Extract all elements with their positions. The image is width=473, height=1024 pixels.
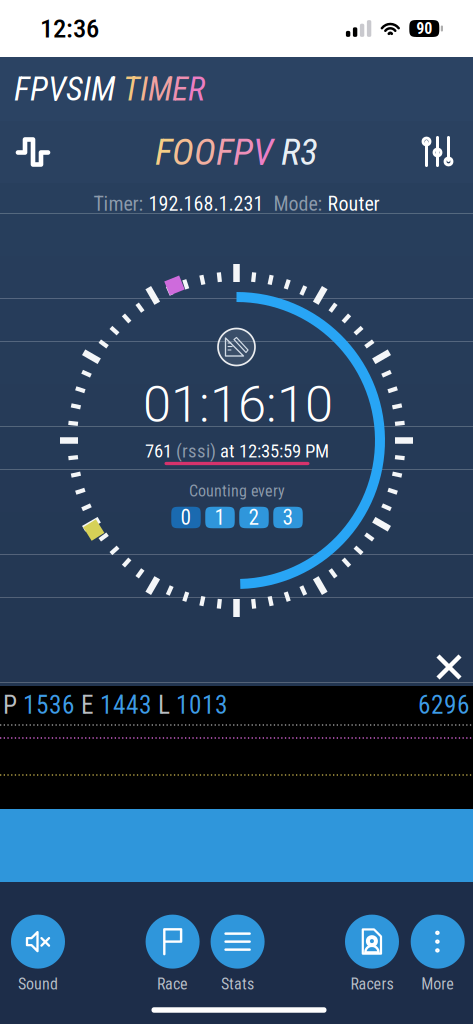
button[interactable]: Race <box>141 915 205 993</box>
staticText: 1536 <box>23 690 75 720</box>
staticText: E <box>172 69 188 109</box>
staticText: O <box>172 130 194 174</box>
staticText: E <box>75 690 100 720</box>
button[interactable]: 0 <box>171 507 201 528</box>
staticText: Counting every <box>189 482 285 500</box>
staticText: T <box>123 69 140 109</box>
staticText: R <box>188 69 205 109</box>
staticText: F <box>216 130 233 174</box>
staticText: Timer: <box>93 192 148 216</box>
staticText: 01:16:10 <box>143 375 333 434</box>
button[interactable]: Waveform <box>2 121 64 183</box>
staticText: More <box>421 975 454 993</box>
staticText: 3 <box>282 505 293 530</box>
staticText: 90 <box>416 19 432 38</box>
staticText: L <box>152 690 176 720</box>
staticText: P <box>233 130 253 174</box>
button[interactable]: More <box>406 915 470 993</box>
staticText: Router <box>327 192 379 216</box>
staticText: R3 <box>273 130 318 174</box>
button[interactable]: Stats <box>206 915 270 993</box>
button[interactable]: 2 <box>239 507 269 528</box>
staticText: Mode: <box>263 192 327 216</box>
button[interactable]: 1 <box>205 507 235 528</box>
staticText: F <box>155 130 172 174</box>
staticText: V <box>253 130 273 174</box>
staticText: 12:36 <box>40 13 99 44</box>
staticText: Race <box>157 975 188 993</box>
button[interactable]: Close <box>422 644 473 690</box>
staticText: Racers <box>350 975 393 993</box>
staticText: 0 <box>180 505 191 530</box>
staticText: at 12:35:59 PM <box>216 440 329 462</box>
staticText: Stats <box>221 975 254 993</box>
staticText: 1443 <box>100 690 152 720</box>
staticText: (rssi) <box>176 440 216 462</box>
staticText: M <box>148 69 172 109</box>
staticText: I <box>140 69 148 109</box>
staticText: P <box>3 690 23 720</box>
staticText: 761 <box>145 440 176 462</box>
staticText: 192.168.1.231 <box>148 192 263 216</box>
staticText: Sound <box>18 975 58 993</box>
staticText: 1 <box>214 505 225 530</box>
button[interactable]: 3 <box>273 507 303 528</box>
staticText: 2 <box>248 505 259 530</box>
staticText: FPVSIM <box>14 69 123 109</box>
button[interactable]: Settings <box>407 121 469 183</box>
staticText: O <box>194 130 216 174</box>
staticText: 6296 <box>418 690 470 720</box>
button[interactable]: Edit <box>218 328 255 365</box>
button[interactable]: Sound <box>6 915 70 993</box>
staticText: 1013 <box>176 690 228 720</box>
button[interactable]: Racers <box>340 915 404 993</box>
